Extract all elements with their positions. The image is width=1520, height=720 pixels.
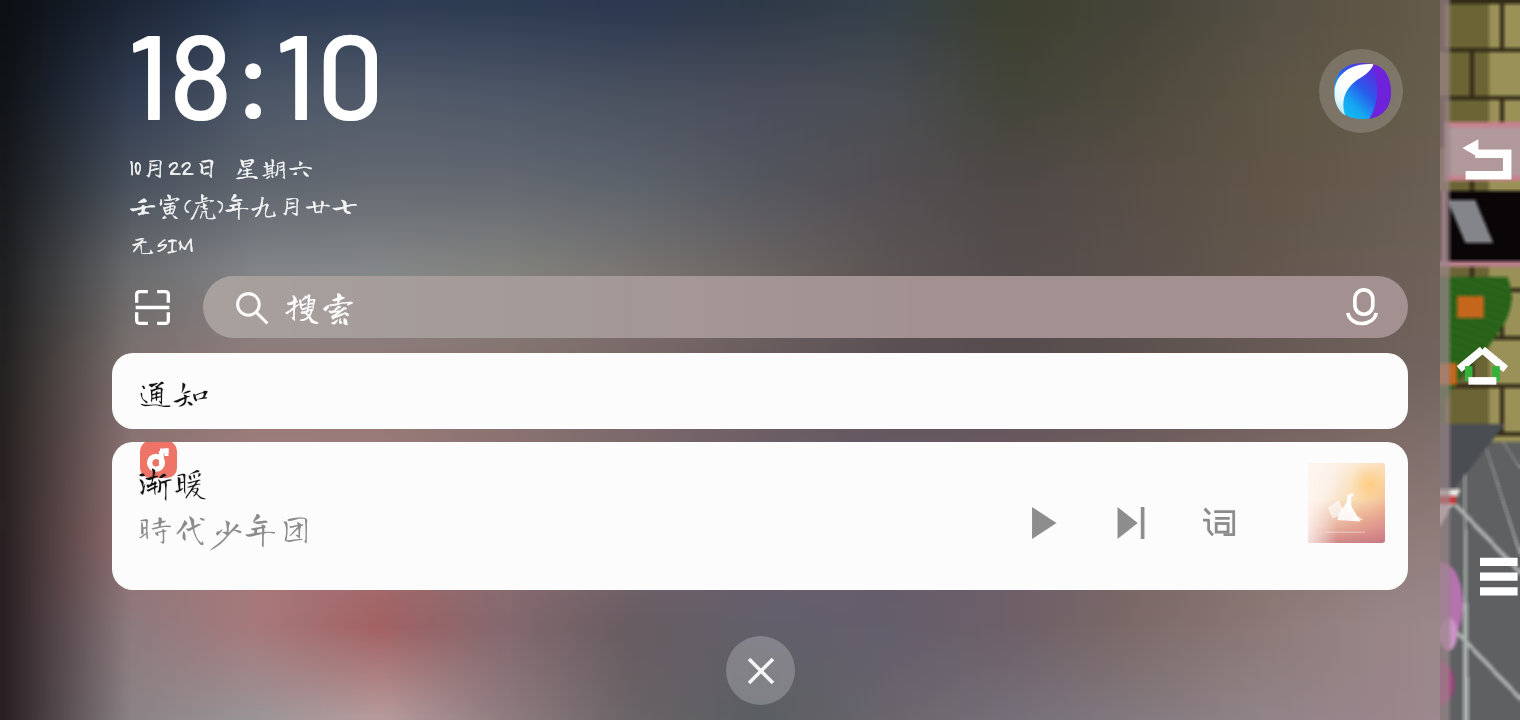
staticText: 搜索 xyxy=(284,288,357,324)
button[interactable]: Play xyxy=(1016,495,1072,551)
staticText: 壬寅(虎)年九月廿七 xyxy=(129,191,359,218)
staticText: 通知 xyxy=(138,374,209,409)
button[interactable]: 通知 xyxy=(112,353,1408,429)
button[interactable]: 搜索 xyxy=(203,276,1408,338)
button[interactable]: Lyrics xyxy=(1191,495,1247,551)
staticText: 无SIM xyxy=(129,230,193,257)
button[interactable]: Close xyxy=(726,636,795,705)
button[interactable]: Voice assistant xyxy=(1319,49,1403,133)
button[interactable] xyxy=(1308,463,1385,543)
staticText: 18:10 xyxy=(127,0,385,144)
button[interactable]: Next track xyxy=(1103,495,1159,551)
staticText: 时代少年团 xyxy=(138,510,314,545)
button[interactable]: 渐暖 xyxy=(112,442,1408,590)
button[interactable]: Scan QR code xyxy=(123,277,181,337)
staticText: 渐暖 xyxy=(138,464,209,499)
staticText: 10月22日 星期六 xyxy=(129,153,315,180)
